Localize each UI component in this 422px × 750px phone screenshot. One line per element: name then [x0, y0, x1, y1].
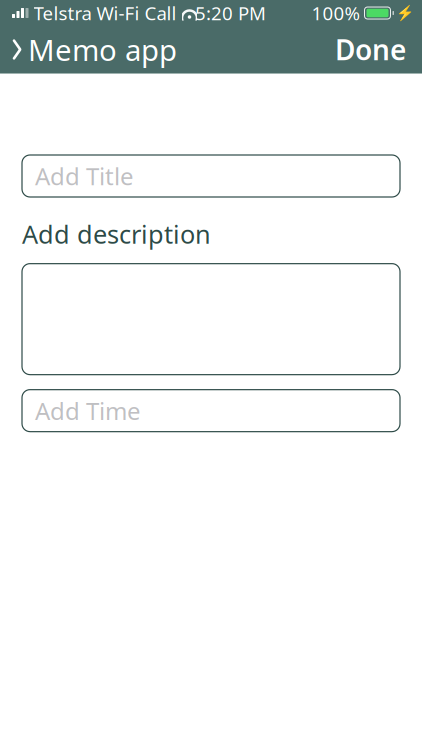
button[interactable]: Add Title	[22, 155, 400, 197]
staticText: 100%	[311, 1, 360, 25]
button[interactable]: Back to Memo app	[0, 26, 185, 72]
button[interactable]: Add Time	[22, 390, 400, 432]
button[interactable]: Done	[319, 26, 422, 72]
button[interactable]: Description text field	[22, 264, 400, 375]
staticText: Add Time	[35, 395, 141, 427]
staticText: Add description	[22, 217, 211, 251]
staticText: Done	[335, 31, 406, 68]
staticText: 5:20 PM	[195, 1, 266, 25]
staticText: Telstra Wi-Fi Call	[33, 1, 176, 25]
staticText: ⚡	[396, 5, 414, 21]
staticText: Memo app	[28, 30, 177, 69]
staticText: Add Title	[35, 160, 134, 192]
